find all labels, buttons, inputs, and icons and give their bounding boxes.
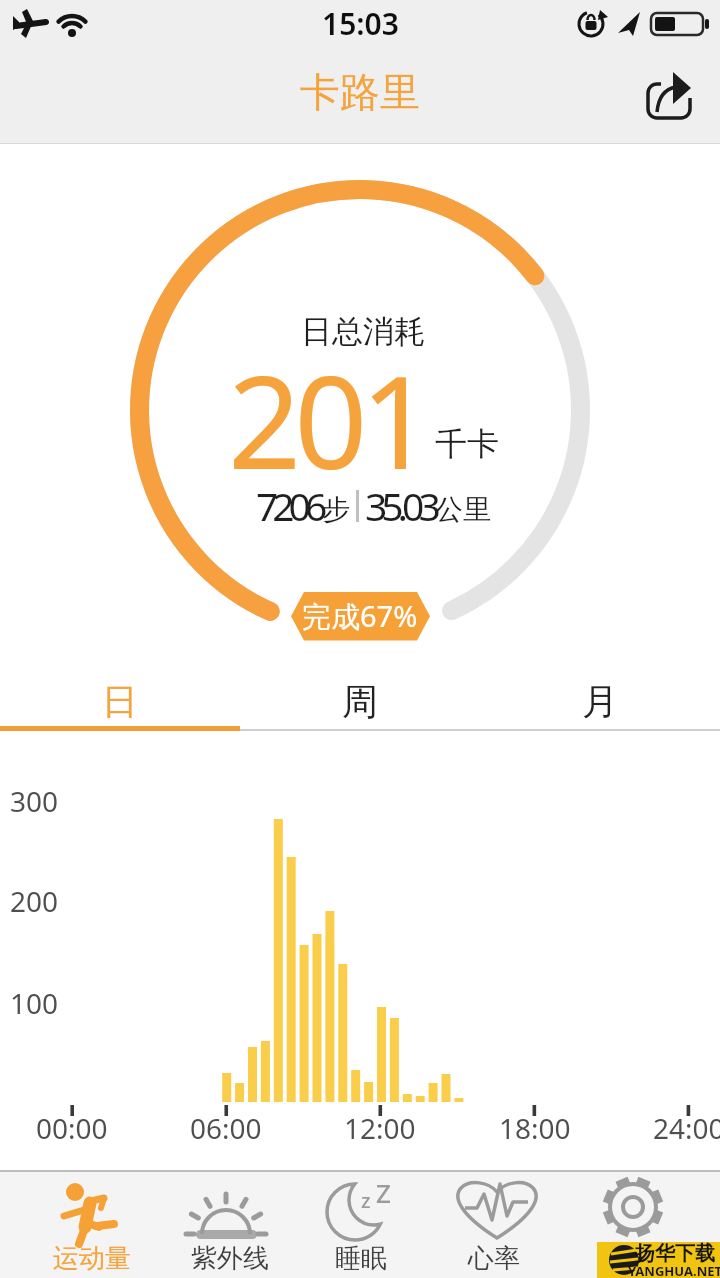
- staticText: 12:00: [344, 1109, 416, 1147]
- staticText: z: [361, 1187, 371, 1213]
- staticText: 06:00: [190, 1109, 262, 1147]
- staticText: 7206: [256, 479, 322, 532]
- staticText: 公里: [435, 492, 491, 527]
- staticText: 15:03: [322, 3, 399, 41]
- button[interactable]: [576, 1170, 720, 1278]
- staticText: 100: [10, 984, 59, 1022]
- staticText: 201: [228, 332, 427, 492]
- staticText: 千卡: [435, 424, 499, 464]
- button[interactable]: 日: [0, 672, 240, 731]
- staticText: YANGHUA.NET: [628, 1262, 720, 1278]
- button[interactable]: [636, 64, 706, 128]
- staticText: 24:00: [653, 1109, 720, 1147]
- staticText: 步: [322, 492, 350, 527]
- staticText: 运动量: [53, 1242, 131, 1275]
- staticText: Z: [376, 1175, 391, 1205]
- staticText: 35.03: [365, 479, 435, 532]
- staticText: 心率: [468, 1242, 520, 1275]
- staticText: 卡路里: [300, 67, 420, 117]
- staticText: 月: [582, 679, 618, 724]
- button[interactable]: 周: [240, 672, 480, 731]
- staticText: 扬华下载: [635, 1241, 715, 1265]
- button[interactable]: [144, 1170, 288, 1278]
- staticText: 300: [10, 782, 59, 820]
- staticText: 周: [342, 679, 378, 724]
- staticText: 日总消耗: [301, 312, 425, 351]
- staticText: 睡眠: [335, 1242, 387, 1275]
- button[interactable]: [288, 1170, 432, 1278]
- staticText: 紫外线: [191, 1242, 269, 1275]
- staticText: 00:00: [36, 1109, 108, 1147]
- staticText: 日: [102, 679, 138, 724]
- button[interactable]: [0, 1170, 144, 1278]
- button[interactable]: [432, 1170, 576, 1278]
- staticText: 完成67%: [302, 596, 418, 636]
- staticText: 18:00: [499, 1109, 571, 1147]
- staticText: 200: [10, 882, 59, 920]
- button[interactable]: 月: [480, 672, 720, 731]
